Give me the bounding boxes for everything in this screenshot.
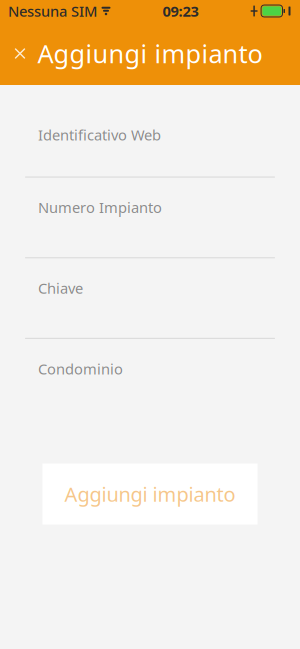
staticText: Numero Impianto [38, 198, 162, 217]
staticText: Aggiungi impianto [64, 481, 235, 507]
staticText: Identificativo Web [38, 125, 161, 144]
staticText: Condominio [38, 359, 123, 378]
button[interactable]: Aggiungi impianto [42, 463, 257, 524]
staticText: Nessuna SIM [8, 1, 97, 21]
staticText: Aggiungi impianto [37, 37, 262, 70]
staticText: 09:23 [163, 1, 199, 21]
staticText: Chiave [38, 278, 83, 298]
button[interactable]: Chiudi [0, 31, 40, 75]
